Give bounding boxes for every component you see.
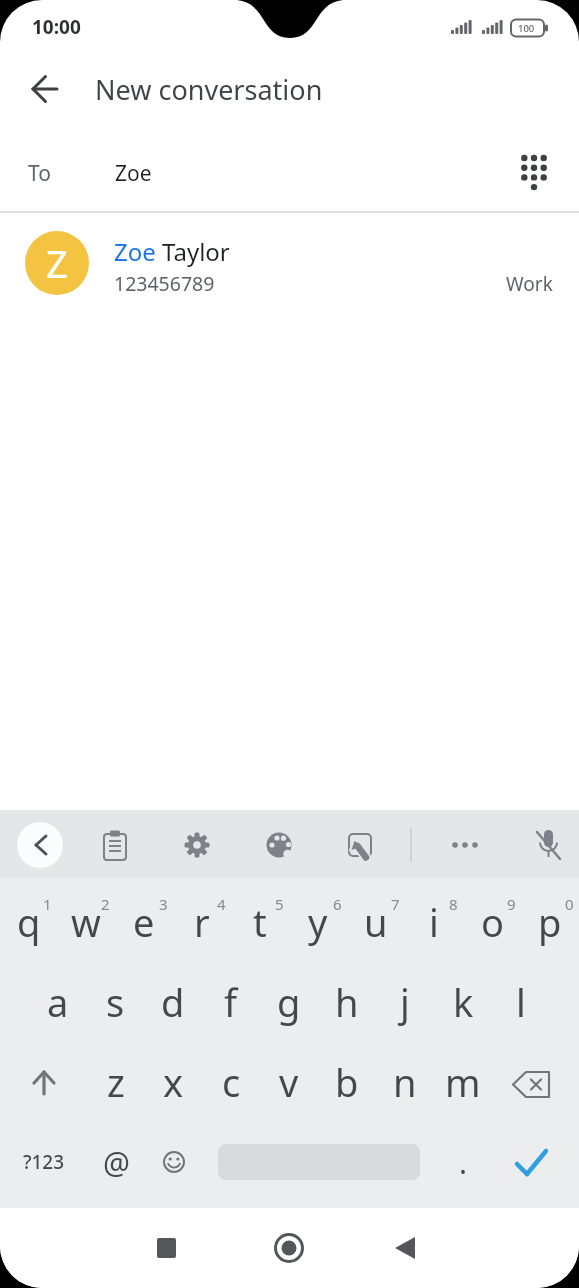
- staticText: 100: [518, 22, 535, 35]
- staticText: i: [429, 896, 439, 948]
- button[interactable]: z: [87, 1042, 144, 1122]
- button[interactable]: Z: [0, 213, 579, 313]
- button[interactable]: [504, 142, 564, 202]
- staticText: d: [161, 976, 185, 1028]
- staticText: h: [335, 976, 359, 1028]
- staticText: y: [308, 896, 328, 948]
- button[interactable]: p: [521, 882, 579, 962]
- staticText: f: [224, 976, 238, 1028]
- staticText: l: [516, 976, 526, 1028]
- staticText: 4: [217, 894, 226, 914]
- staticText: 2: [101, 894, 110, 914]
- button[interactable]: To: [0, 130, 579, 211]
- staticText: r: [194, 896, 210, 948]
- staticText: g: [277, 976, 301, 1028]
- staticText: Z: [46, 237, 68, 289]
- button[interactable]: [164, 810, 247, 878]
- button[interactable]: l: [492, 962, 550, 1042]
- button[interactable]: q: [0, 882, 57, 962]
- staticText: 123456789: [114, 270, 215, 297]
- button[interactable]: g: [260, 962, 318, 1042]
- staticText: 8: [449, 894, 458, 914]
- staticText: 10:00: [32, 14, 81, 40]
- button[interactable]: [496, 810, 579, 878]
- staticText: p: [538, 896, 562, 948]
- button[interactable]: [0, 810, 82, 878]
- button[interactable]: [413, 810, 496, 878]
- button[interactable]: n: [376, 1042, 434, 1122]
- button[interactable]: e: [115, 882, 173, 962]
- button[interactable]: k: [434, 962, 492, 1042]
- button[interactable]: [247, 810, 330, 878]
- staticText: z: [107, 1056, 125, 1108]
- staticText: New conversation: [95, 71, 323, 108]
- staticText: a: [47, 976, 69, 1028]
- staticText: b: [335, 1056, 359, 1108]
- staticText: s: [106, 976, 125, 1028]
- button[interactable]: w: [57, 882, 115, 962]
- staticText: Zoe Taylor: [114, 235, 230, 268]
- button[interactable]: [17, 61, 73, 117]
- button[interactable]: [386, 1208, 579, 1288]
- staticText: .: [459, 1142, 468, 1183]
- staticText: x: [163, 1056, 184, 1108]
- button[interactable]: t: [231, 882, 289, 962]
- staticText: ?123: [23, 1149, 65, 1175]
- button[interactable]: [0, 1042, 87, 1122]
- staticText: o: [481, 896, 504, 948]
- button[interactable]: x: [144, 1042, 202, 1122]
- staticText: @: [103, 1142, 130, 1183]
- staticText: e: [133, 896, 155, 948]
- button[interactable]: [193, 1208, 386, 1288]
- staticText: To: [28, 159, 51, 188]
- button[interactable]: o: [463, 882, 521, 962]
- staticText: 5: [275, 894, 284, 914]
- button[interactable]: f: [202, 962, 260, 1042]
- staticText: u: [364, 896, 388, 948]
- button[interactable]: [145, 1122, 203, 1202]
- staticText: 7: [391, 894, 400, 914]
- staticText: c: [222, 1056, 241, 1108]
- button[interactable]: m: [434, 1042, 492, 1122]
- staticText: Zoe: [115, 159, 152, 188]
- staticText: m: [445, 1056, 481, 1108]
- staticText: t: [253, 896, 267, 948]
- staticText: k: [453, 976, 474, 1028]
- button[interactable]: v: [260, 1042, 318, 1122]
- button[interactable]: [492, 1042, 579, 1122]
- staticText: j: [400, 976, 410, 1028]
- button[interactable]: u: [347, 882, 405, 962]
- button[interactable]: r: [173, 882, 231, 962]
- staticText: w: [71, 896, 101, 948]
- staticText: Work: [506, 271, 553, 297]
- button[interactable]: b: [318, 1042, 376, 1122]
- button[interactable]: [0, 1208, 193, 1288]
- button[interactable]: ?123: [0, 1122, 87, 1202]
- staticText: v: [279, 1056, 299, 1108]
- staticText: 1: [43, 894, 52, 914]
- staticText: 6: [333, 894, 342, 914]
- button[interactable]: h: [318, 962, 376, 1042]
- button[interactable]: [82, 810, 164, 878]
- button[interactable]: @: [87, 1122, 145, 1202]
- button[interactable]: c: [202, 1042, 260, 1122]
- button[interactable]: a: [29, 962, 86, 1042]
- button[interactable]: [492, 1122, 579, 1202]
- button[interactable]: s: [86, 962, 144, 1042]
- staticText: 0: [565, 894, 574, 914]
- button[interactable]: .: [434, 1122, 492, 1202]
- staticText: 9: [507, 894, 516, 914]
- button[interactable]: y: [289, 882, 347, 962]
- staticText: n: [393, 1056, 417, 1108]
- staticText: 3: [159, 894, 168, 914]
- staticText: q: [17, 896, 41, 948]
- button[interactable]: i: [405, 882, 463, 962]
- button[interactable]: d: [144, 962, 202, 1042]
- button[interactable]: j: [376, 962, 434, 1042]
- button[interactable]: [330, 810, 413, 878]
